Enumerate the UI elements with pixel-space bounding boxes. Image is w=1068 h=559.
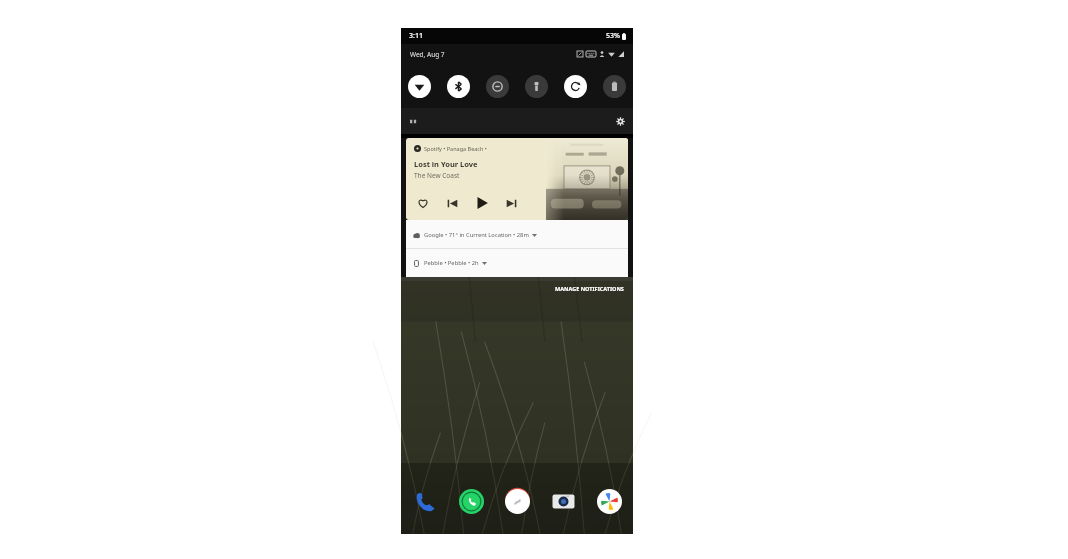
- button[interactable]: Flashlight: [525, 75, 548, 98]
- staticText: MANAGE NOTIFICATIONS: [555, 285, 624, 292]
- button[interactable]: Camera: [548, 486, 578, 516]
- button[interactable]: Settings: [613, 114, 627, 128]
- staticText: Pebble • Pebble • 2h: [424, 259, 479, 267]
- button[interactable]: Wi-Fi: [408, 75, 431, 98]
- button[interactable]: Next: [503, 195, 520, 212]
- button[interactable]: Photos: [594, 486, 624, 516]
- button[interactable]: Favorite: [414, 194, 432, 212]
- button[interactable]: Edit tiles: [407, 115, 419, 127]
- button[interactable]: Do not disturb: [486, 75, 509, 98]
- staticText: Spotify • Panaga Beach •: [424, 145, 487, 152]
- staticText: Google • 71° in Current Location • 28m: [424, 231, 529, 239]
- button[interactable]: Pebble • Pebble • 2h: [406, 249, 628, 277]
- button[interactable]: Spotify • Panaga Beach •: [406, 138, 628, 220]
- button[interactable]: Phone: [410, 486, 440, 516]
- staticText: Wed, Aug 7: [410, 50, 445, 59]
- button[interactable]: Battery saver: [603, 75, 626, 98]
- button[interactable]: Previous: [444, 195, 461, 212]
- button[interactable]: Auto rotate: [564, 75, 587, 98]
- staticText: 53%: [606, 31, 620, 41]
- button[interactable]: Files: [502, 486, 532, 516]
- staticText: The New Coast: [414, 171, 460, 180]
- button[interactable]: Google • 71° in Current Location • 28m: [406, 220, 628, 249]
- button[interactable]: Play: [472, 193, 492, 213]
- button[interactable]: WhatsApp: [456, 486, 486, 516]
- button[interactable]: MANAGE NOTIFICATIONS: [555, 285, 624, 292]
- button[interactable]: Bluetooth: [447, 75, 470, 98]
- staticText: Lost in Your Love: [414, 159, 478, 169]
- staticText: 3:11: [409, 31, 423, 41]
